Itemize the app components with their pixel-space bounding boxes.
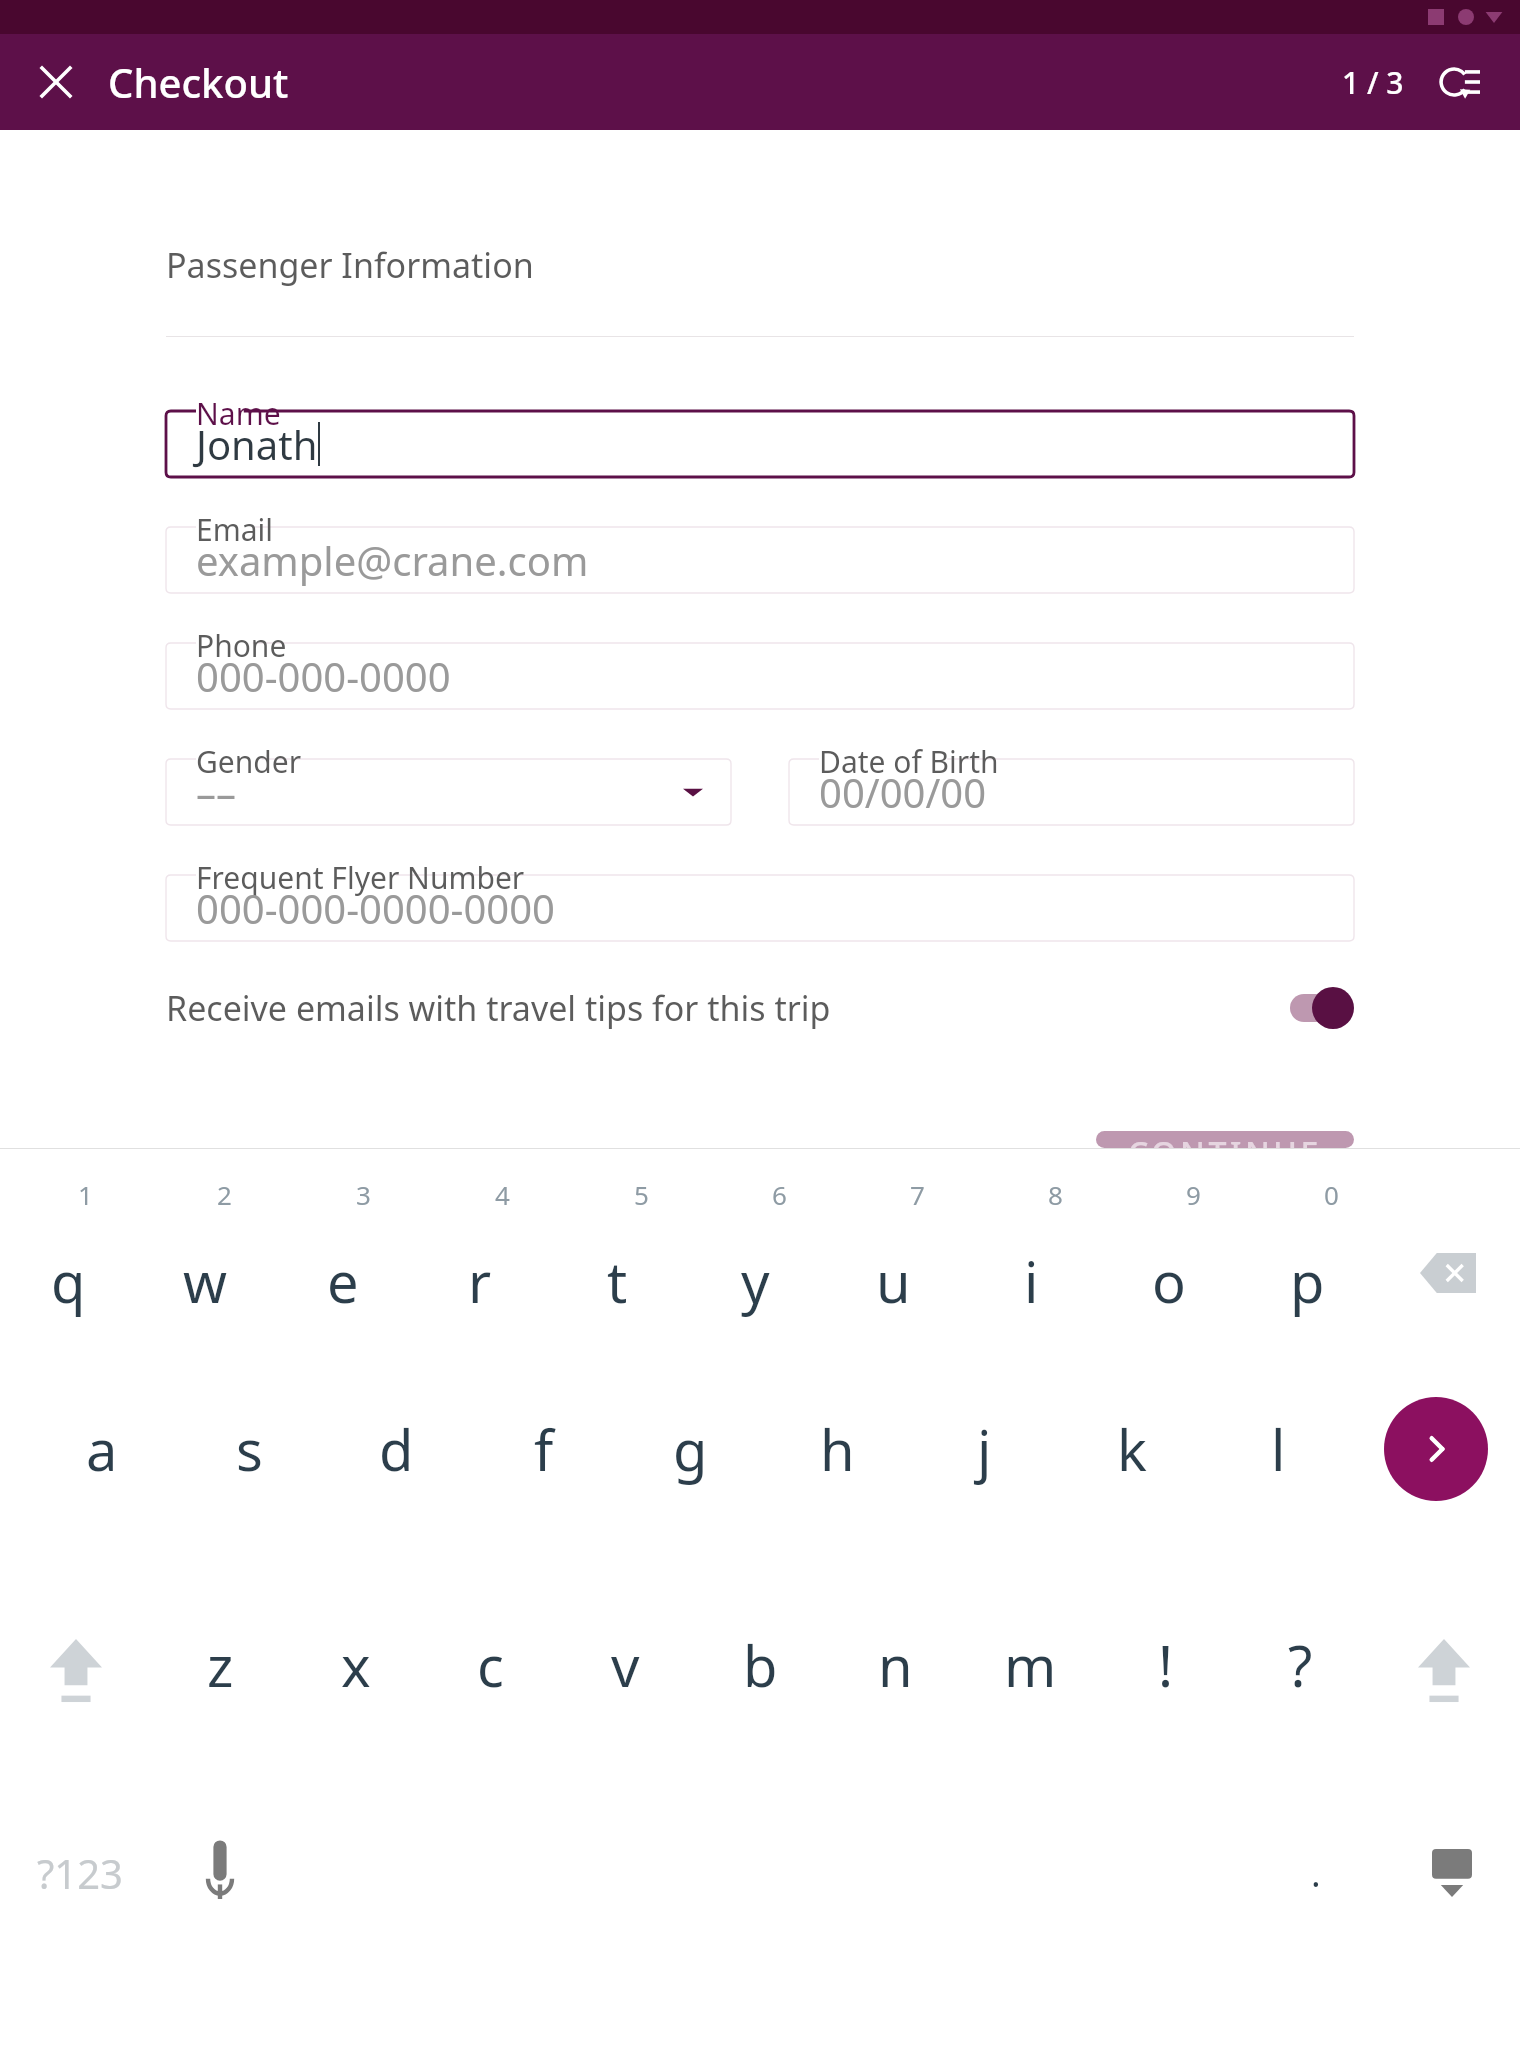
button[interactable]: c (423, 1605, 558, 1725)
button[interactable]: ! (1098, 1605, 1233, 1725)
staticText: c (477, 1627, 504, 1703)
button[interactable]: q (0, 1221, 137, 1341)
button[interactable]: Voice input (160, 1813, 280, 1933)
button[interactable]: a (28, 1389, 176, 1509)
button[interactable]: l (1205, 1389, 1352, 1509)
button[interactable]: m (963, 1605, 1098, 1725)
staticText: u (876, 1243, 911, 1319)
button[interactable]: x (288, 1605, 423, 1725)
button[interactable]: f (470, 1389, 617, 1509)
button[interactable]: Close (32, 58, 80, 106)
button[interactable]: h (764, 1389, 911, 1509)
button[interactable]: Frequent Flyer Number (166, 857, 1354, 941)
staticText: w (183, 1243, 228, 1319)
button[interactable]: Shift (1368, 1605, 1520, 1741)
staticText: b (743, 1627, 778, 1703)
staticText: Date of Birth (819, 741, 999, 782)
button[interactable]: Phone (166, 625, 1354, 709)
staticText: Receive emails with travel tips for this… (166, 985, 831, 1031)
button[interactable]: g (617, 1389, 764, 1509)
staticText: Phone (196, 625, 287, 666)
staticText: h (820, 1411, 855, 1487)
button[interactable]: Date of Birth (789, 741, 1354, 825)
staticText: 9 (1186, 1177, 1201, 1212)
staticText: Jonath (196, 417, 318, 471)
button[interactable]: CONTINUE (1096, 1131, 1354, 1148)
button[interactable]: ? (1233, 1605, 1368, 1725)
staticText: n (878, 1627, 913, 1703)
staticText: Name (196, 393, 281, 434)
staticText: 7 (910, 1177, 925, 1212)
staticText: 1 / 3 (1342, 62, 1404, 103)
button[interactable]: Receive emails with travel tips for this… (166, 985, 1354, 1031)
staticText: k (1117, 1411, 1147, 1487)
staticText: z (207, 1627, 234, 1703)
staticText: d (379, 1411, 414, 1487)
button[interactable]: Backspace (1376, 1221, 1520, 1325)
button[interactable]: Next (1384, 1397, 1488, 1501)
staticText: p (1290, 1243, 1325, 1319)
button[interactable]: Hide keyboard (1384, 1813, 1520, 1933)
staticText: 000-000-0000 (196, 649, 451, 703)
staticText: example@crane.com (196, 533, 589, 587)
staticText: ! (1158, 1627, 1174, 1703)
staticText: i (1024, 1243, 1039, 1319)
button[interactable]: o (1100, 1221, 1238, 1341)
button[interactable]: w (137, 1221, 274, 1341)
staticText: ?123 (37, 1846, 123, 1900)
button[interactable]: Name (166, 393, 1354, 477)
staticText: 2 (217, 1177, 232, 1212)
staticText: g (673, 1411, 708, 1487)
button[interactable]: d (323, 1389, 470, 1509)
staticText: ? (1288, 1627, 1313, 1703)
button[interactable]: v (558, 1605, 693, 1725)
staticText: a (86, 1411, 118, 1487)
staticText: e (327, 1243, 359, 1319)
staticText: 5 (634, 1177, 649, 1212)
button[interactable]: e (274, 1221, 411, 1341)
staticText: j (977, 1411, 992, 1487)
button[interactable]: b (693, 1605, 828, 1725)
button[interactable]: Itinerary (1436, 56, 1488, 108)
staticText: 000-000-0000-0000 (196, 881, 555, 935)
staticText: y (741, 1243, 770, 1319)
staticText: Frequent Flyer Number (196, 857, 525, 898)
staticText: q (51, 1243, 86, 1319)
staticText: Gender (196, 741, 302, 782)
button[interactable] (1290, 986, 1354, 1030)
staticText: 4 (495, 1177, 510, 1212)
button[interactable]: n (828, 1605, 963, 1725)
staticText: CONTINUE (1128, 1131, 1322, 1148)
button[interactable]: k (1058, 1389, 1205, 1509)
staticText: o (1152, 1243, 1186, 1319)
button[interactable]: s (176, 1389, 323, 1509)
button[interactable]: Gender (166, 741, 731, 825)
staticText: v (611, 1627, 640, 1703)
staticText: Email (196, 509, 274, 550)
button[interactable]: y (686, 1221, 824, 1341)
button[interactable]: Shift (0, 1605, 152, 1741)
button[interactable]: i (962, 1221, 1100, 1341)
staticText: Passenger Information (166, 242, 534, 288)
staticText: –– (196, 765, 236, 819)
button[interactable]: . (1248, 1813, 1384, 1933)
staticText: 8 (1048, 1177, 1063, 1212)
button[interactable]: r (411, 1221, 548, 1341)
button[interactable]: u (824, 1221, 962, 1341)
staticText: m (1004, 1627, 1057, 1703)
staticText: t (607, 1243, 628, 1319)
button[interactable]: ?123 (0, 1813, 160, 1933)
staticText: l (1271, 1411, 1286, 1487)
button[interactable]: z (152, 1605, 288, 1725)
button[interactable]: Email (166, 509, 1354, 593)
button[interactable]: t (548, 1221, 686, 1341)
staticText: . (1311, 1849, 1321, 1898)
staticText: 1 (78, 1177, 93, 1212)
staticText: 0 (1324, 1177, 1339, 1212)
staticText: 3 (356, 1177, 371, 1212)
button[interactable]: p (1238, 1221, 1376, 1341)
staticText: r (468, 1243, 492, 1319)
staticText: 00/00/00 (819, 765, 987, 819)
button[interactable]: j (911, 1389, 1058, 1509)
staticText: Checkout (108, 55, 289, 109)
